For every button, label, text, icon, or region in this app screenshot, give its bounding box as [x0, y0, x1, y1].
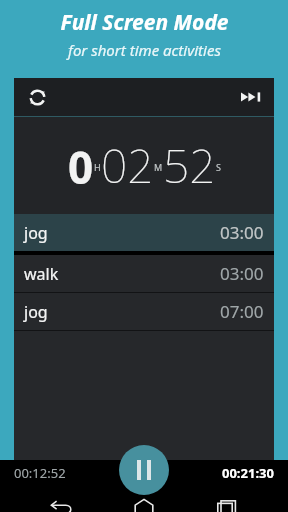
- staticText: S: [216, 161, 221, 173]
- button[interactable]: jog: [14, 214, 274, 251]
- button[interactable]: 0: [14, 117, 274, 214]
- staticText: 02: [101, 134, 154, 197]
- staticText: 0: [68, 137, 94, 197]
- button[interactable]: Home: [122, 486, 166, 512]
- button[interactable]: Recents: [205, 486, 249, 512]
- button[interactable]: walk: [14, 255, 274, 292]
- staticText: 03:00: [220, 221, 264, 244]
- button[interactable]: Loop: [22, 82, 52, 112]
- staticText: 07:00: [220, 300, 264, 323]
- staticText: 52: [163, 134, 216, 197]
- staticText: 03:00: [220, 262, 264, 285]
- staticText: 00:21:30: [222, 464, 274, 482]
- button[interactable]: Pause: [119, 445, 169, 495]
- staticText: jog: [24, 301, 48, 323]
- staticText: Full Screen Mode: [60, 8, 229, 37]
- staticText: 00:12:52: [14, 464, 66, 482]
- button[interactable]: Back: [39, 486, 83, 512]
- staticText: jog: [24, 222, 48, 244]
- staticText: H: [94, 161, 101, 173]
- staticText: walk: [24, 263, 59, 285]
- staticText: M: [154, 161, 163, 173]
- button[interactable]: Skip next: [236, 82, 266, 112]
- button[interactable]: jog: [14, 293, 274, 330]
- staticText: for short time activities: [68, 40, 221, 60]
